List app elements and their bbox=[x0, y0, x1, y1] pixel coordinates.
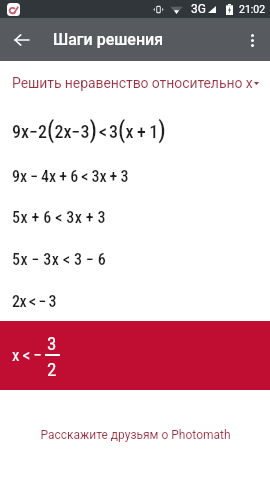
staticText: 5x + 6 < 3x + 3 bbox=[12, 208, 107, 227]
button[interactable]: Расскажите друзьям о Photomath bbox=[0, 424, 270, 446]
staticText: 5x − 3x < 3 − 6 bbox=[12, 250, 107, 269]
staticText: 3 bbox=[47, 332, 57, 354]
staticText: 9x−2(2x−3) < 3(x + 1) bbox=[12, 117, 166, 144]
staticText: 2 bbox=[47, 358, 57, 380]
staticText: 2x < − 3 bbox=[12, 292, 57, 311]
button[interactable]: Решить неравенство относительно x bbox=[12, 75, 259, 91]
staticText: Решить неравенство относительно x bbox=[12, 75, 253, 91]
staticText: 9x − 4x + 6 < 3x + 3 bbox=[12, 167, 129, 186]
staticText: x < − bbox=[12, 345, 43, 365]
button[interactable]: More options bbox=[234, 22, 270, 58]
button[interactable]: Back bbox=[0, 18, 43, 61]
staticText: Шаги решения bbox=[53, 30, 164, 49]
staticText: 3G bbox=[191, 2, 206, 16]
staticText: 21:02 bbox=[239, 3, 266, 15]
staticText: Расскажите друзьям о Photomath bbox=[40, 428, 231, 442]
